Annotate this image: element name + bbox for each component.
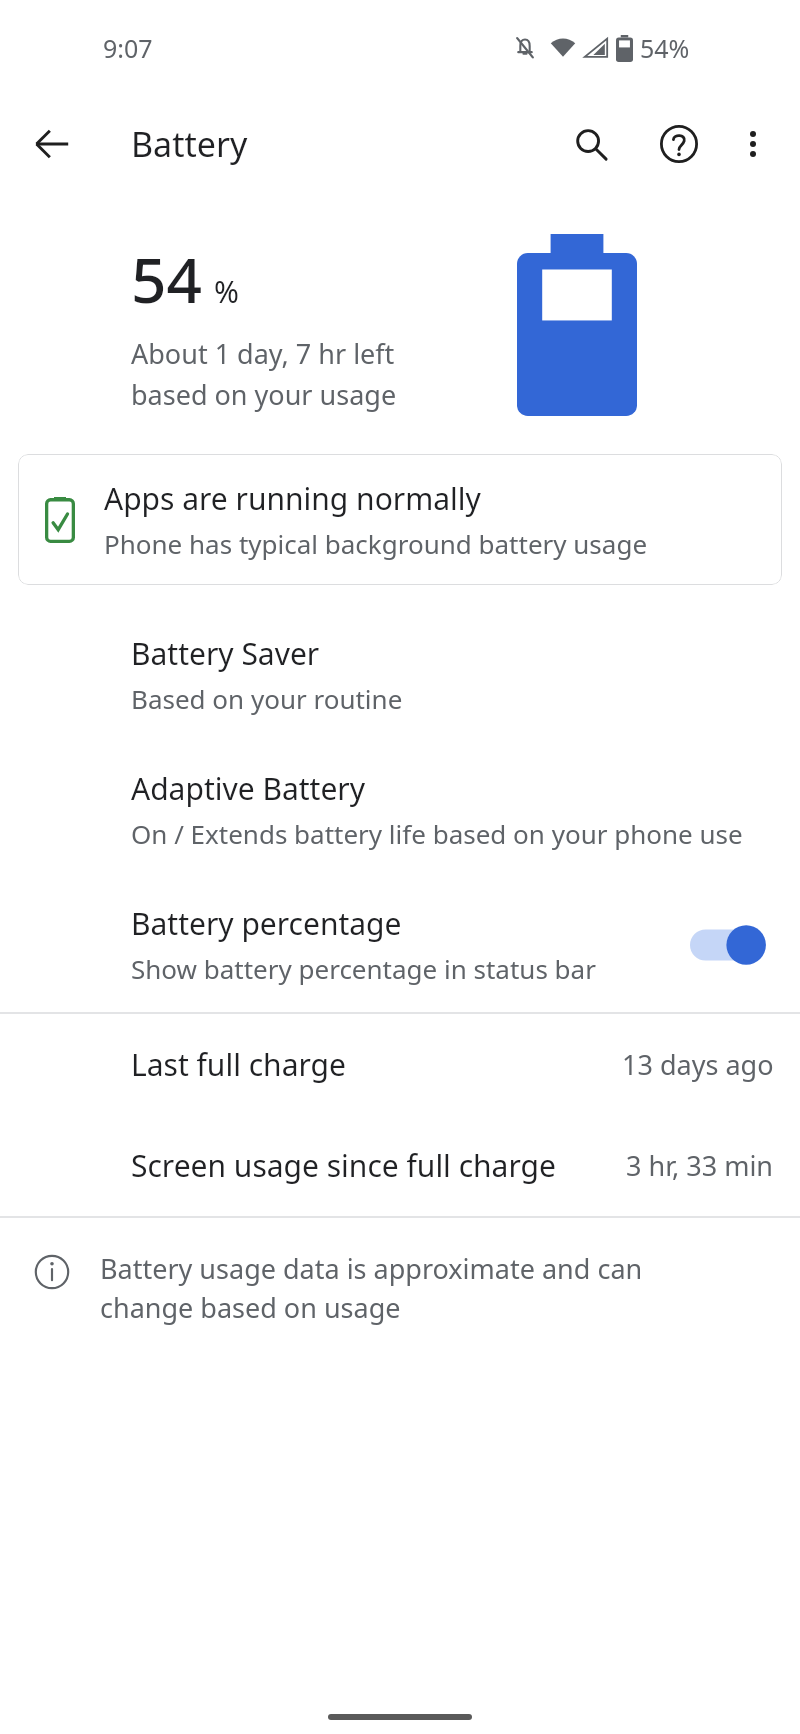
staticText: About 1 day, 7 hr left [131,335,395,372]
button[interactable]: Battery percentage [0,877,800,1012]
button[interactable]: Back [22,114,82,174]
staticText: Last full charge [131,1044,346,1085]
button[interactable]: Last full charge [0,1014,800,1115]
staticText: Battery [131,121,248,167]
staticText: Apps are running normally [104,478,481,519]
button[interactable]: Search [560,113,622,175]
staticText: % [214,271,239,312]
other: Battery percentage toggle [690,919,768,971]
staticText: Show battery percentage in status bar [131,951,596,986]
staticText: 9:07 [103,31,153,65]
staticText: Battery usage data is approximate and ca… [100,1250,740,1326]
staticText: 54% [640,31,690,65]
staticText: Phone has typical background battery usa… [104,526,648,561]
staticText: Battery Saver [131,633,320,674]
button[interactable]: Screen usage since full charge [0,1115,800,1216]
button[interactable]: Help [648,113,710,175]
button[interactable]: Adaptive Battery [0,742,800,877]
button[interactable]: Apps are running normally [18,454,782,585]
staticText: Adaptive Battery [131,768,366,809]
button[interactable]: More options [724,115,782,173]
staticText: based on your usage [131,376,397,413]
staticText: 13 days ago [622,1046,774,1083]
staticText: On / Extends battery life based on your … [131,816,743,851]
staticText: Screen usage since full charge [131,1145,556,1186]
staticText: Based on your routine [131,681,403,716]
staticText: 3 hr, 33 min [626,1147,774,1184]
staticText: 54 [131,237,202,321]
staticText: Battery percentage [131,903,402,944]
button[interactable]: Battery Saver [0,607,800,742]
other: Information [22,1242,82,1302]
